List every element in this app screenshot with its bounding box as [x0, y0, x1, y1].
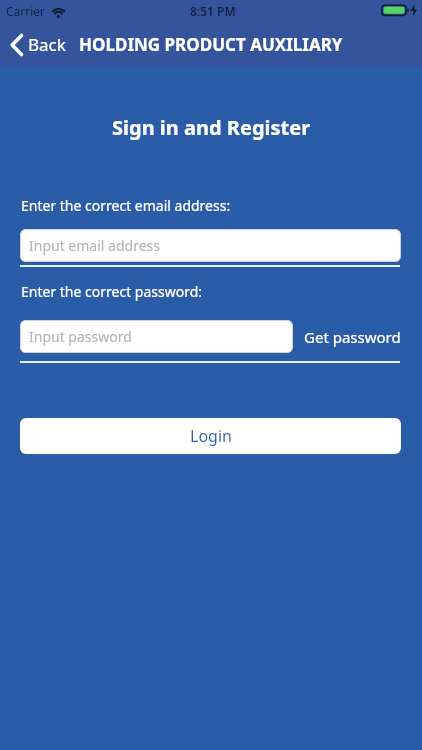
staticText: Input password [29, 327, 132, 346]
button[interactable]: Input password [20, 320, 293, 353]
staticText: Sign in and Register [112, 114, 311, 141]
staticText: Enter the correct email address: [21, 196, 231, 215]
button[interactable]: Login [20, 418, 401, 454]
staticText: HOLDING PRODUCT AUXILIARY [79, 33, 343, 56]
button[interactable]: Back [10, 33, 66, 56]
button[interactable]: Input email address [20, 229, 401, 262]
button[interactable]: Get password [296, 320, 408, 353]
staticText: Login [190, 425, 232, 447]
staticText: 8:51 PM [190, 3, 236, 19]
staticText: Carrier [6, 3, 46, 19]
staticText: Enter the correct password: [21, 282, 203, 301]
staticText: Get password [304, 327, 401, 347]
staticText: Back [28, 33, 66, 56]
staticText: Input email address [29, 236, 160, 255]
